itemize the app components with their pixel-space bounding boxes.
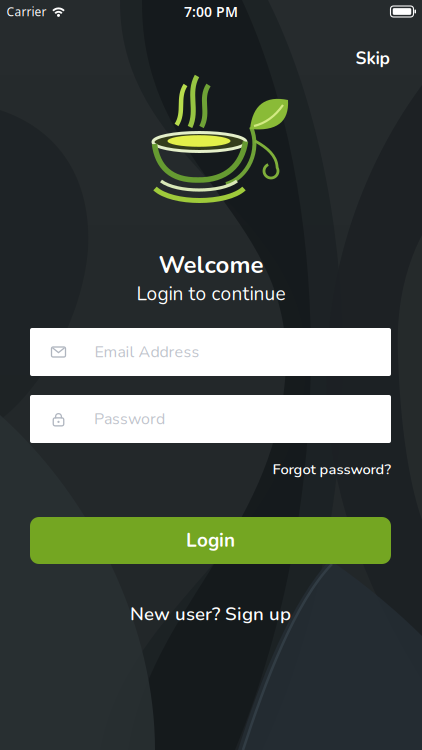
button[interactable]: Password [30,395,391,443]
staticText: Welcome [158,249,263,281]
staticText: Email Address [94,341,199,363]
staticText: Login to continue [136,281,285,307]
staticText: Skip [355,47,389,70]
staticText: 7:00 PM [184,2,238,21]
button[interactable]: Login [30,517,391,564]
button[interactable]: Forgot password? [272,459,391,479]
staticText: Carrier [6,3,46,20]
staticText: Login [186,528,235,553]
staticText: Password [94,408,165,430]
staticText: New user? Sign up [130,601,291,627]
button[interactable]: Email Address [30,328,391,376]
button[interactable]: New user? Sign up [130,601,291,627]
button[interactable]: Skip [347,39,397,78]
staticText: Forgot password? [272,459,391,479]
